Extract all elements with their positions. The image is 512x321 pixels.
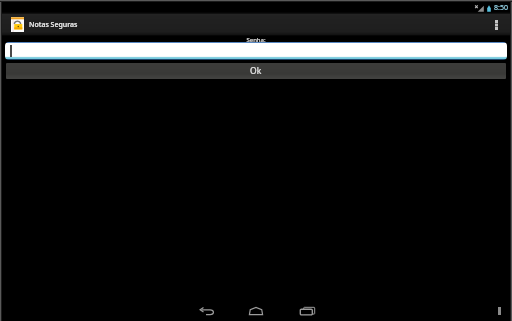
- staticText: 8:50: [494, 3, 508, 13]
- button[interactable]: More options: [492, 302, 506, 320]
- staticText: Notas Seguras: [29, 20, 78, 30]
- button[interactable]: [5, 42, 507, 60]
- button[interactable]: Recent apps: [294, 302, 320, 320]
- button[interactable]: Ok: [6, 63, 506, 79]
- button[interactable]: Home: [243, 302, 269, 320]
- staticText: Ok: [250, 65, 262, 77]
- staticText: Senha:: [246, 36, 266, 42]
- button[interactable]: Back: [194, 302, 220, 320]
- button[interactable]: More options: [490, 14, 502, 36]
